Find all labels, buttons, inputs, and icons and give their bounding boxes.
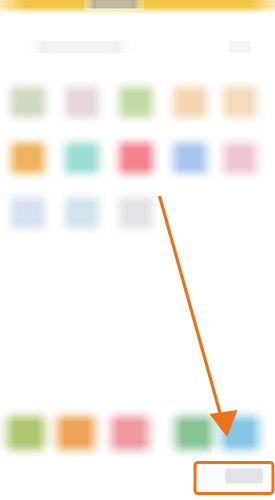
button[interactable]: App	[57, 79, 107, 125]
button[interactable]: App	[111, 135, 161, 181]
button[interactable]: Music	[102, 408, 158, 458]
button[interactable]: Edit	[226, 40, 254, 54]
button[interactable]: App	[57, 190, 107, 236]
button[interactable]: App	[165, 79, 215, 125]
button[interactable]: App	[165, 135, 215, 181]
button[interactable]: Search	[24, 39, 136, 55]
button[interactable]: App	[57, 135, 107, 181]
button[interactable]: Phone	[0, 408, 54, 458]
button[interactable]: Safari	[212, 408, 268, 458]
button[interactable]: App	[215, 135, 265, 181]
button[interactable]: App	[3, 190, 53, 236]
button[interactable]: App	[215, 79, 265, 125]
button[interactable]: Mail	[166, 408, 222, 458]
button[interactable]: App	[111, 79, 161, 125]
button[interactable]: App	[111, 190, 161, 236]
button[interactable]: App	[3, 135, 53, 181]
button[interactable]: Messages	[48, 408, 104, 458]
button[interactable]: App	[3, 79, 53, 125]
